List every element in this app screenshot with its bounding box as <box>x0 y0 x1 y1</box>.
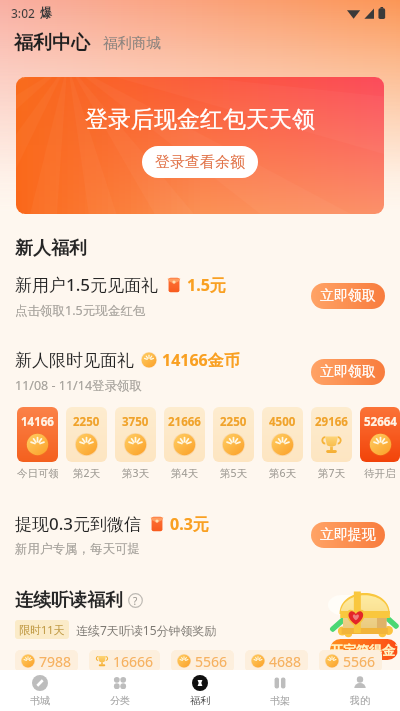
staticText: 3:02 <box>11 5 35 21</box>
button[interactable]: 说明 <box>128 593 143 608</box>
button[interactable]: 52664 <box>360 407 400 480</box>
staticText: 4500 <box>269 414 296 430</box>
staticText: 点击领取1.5元现金红包 <box>15 302 146 319</box>
staticText: 立即领取 <box>320 363 376 381</box>
staticText: 7988 <box>39 652 72 671</box>
staticText: 3750 <box>122 414 149 430</box>
button[interactable]: 福利商城 <box>103 34 161 52</box>
button[interactable]: 书架 <box>240 670 320 711</box>
staticText: 新用户1.5元见面礼 <box>15 273 159 296</box>
staticText: 21666 <box>168 414 201 430</box>
staticText: 新用户专属，每天可提 <box>15 541 140 557</box>
button[interactable]: 我的 <box>320 670 400 711</box>
staticText: 书架 <box>270 694 290 707</box>
button[interactable]: 2250 <box>66 407 107 480</box>
staticText: 第7天 <box>318 466 346 480</box>
staticText: 新人福利 <box>15 237 87 260</box>
staticText: 登录后现金红包天天领 <box>85 105 315 134</box>
button[interactable]: 立即提现 <box>311 522 385 548</box>
staticText: 爆 <box>40 5 52 20</box>
staticText: 第3天 <box>122 466 150 480</box>
staticText: 立即提现 <box>320 526 376 544</box>
button[interactable]: 书城 <box>0 670 80 711</box>
button[interactable]: 登录查看余额 <box>142 146 258 178</box>
staticText: 开宝箱得金币 <box>330 642 398 658</box>
staticText: 福利中心 <box>14 31 90 55</box>
button[interactable]: 3750 <box>115 407 156 480</box>
staticText: 2250 <box>220 414 247 430</box>
staticText: 52664 <box>364 414 397 430</box>
staticText: 第2天 <box>73 466 101 480</box>
staticText: 0.3元 <box>170 513 209 535</box>
button[interactable]: 分类 <box>80 670 160 711</box>
staticText: 第4天 <box>171 466 199 480</box>
button[interactable]: 立即领取 <box>311 359 385 385</box>
staticText: 立即领取 <box>320 287 376 305</box>
button[interactable]: 登录后现金红包天天领 <box>16 77 384 214</box>
staticText: 连续听读福利 <box>15 589 123 612</box>
staticText: 限时11天 <box>19 622 65 637</box>
button[interactable]: 立即领取 <box>311 283 385 309</box>
staticText: 16666 <box>113 652 154 671</box>
staticText: 新人限时见面礼 <box>15 350 134 371</box>
staticText: 登录查看余额 <box>155 153 245 172</box>
staticText: 第5天 <box>220 466 248 480</box>
button[interactable]: 14166 <box>17 407 58 480</box>
staticText: 福利 <box>190 694 210 707</box>
staticText: 第6天 <box>269 466 297 480</box>
button[interactable]: 福利 <box>160 670 240 711</box>
staticText: 1.5元 <box>187 274 226 296</box>
staticText: 分类 <box>110 694 130 707</box>
staticText: 11/08 - 11/14登录领取 <box>15 377 143 394</box>
staticText: 我的 <box>350 694 370 707</box>
staticText: 福利商城 <box>103 34 161 52</box>
staticText: 提现0.3元到微信 <box>15 512 142 535</box>
staticText: ? <box>133 594 138 608</box>
staticText: 待开启 <box>364 467 396 480</box>
button[interactable]: 福利中心 <box>14 31 90 55</box>
button[interactable]: 2250 <box>213 407 254 480</box>
staticText: 14166 <box>21 414 54 430</box>
button[interactable]: 4500 <box>262 407 303 480</box>
staticText: 2250 <box>73 414 100 430</box>
button[interactable]: 29166 <box>311 407 352 480</box>
staticText: 5566 <box>343 652 376 671</box>
staticText: 连续7天听读15分钟领奖励 <box>76 622 217 638</box>
staticText: 29166 <box>315 414 348 430</box>
button[interactable]: 开宝箱得金币 <box>328 589 396 639</box>
button[interactable]: 21666 <box>164 407 205 480</box>
staticText: 书城 <box>30 694 50 707</box>
staticText: 今日可领 <box>17 467 58 480</box>
staticText: 5566 <box>195 652 228 671</box>
staticText: 4688 <box>269 652 302 671</box>
staticText: 14166金币 <box>162 349 240 371</box>
